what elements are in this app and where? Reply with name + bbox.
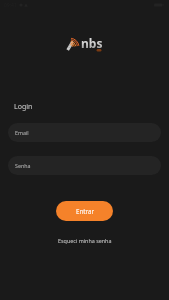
button[interactable]: Email xyxy=(8,123,161,142)
staticText: Senha xyxy=(15,162,31,169)
staticText: nbs xyxy=(81,35,103,51)
staticText: Esqueci minha senha xyxy=(58,237,112,244)
staticText: Email xyxy=(15,129,29,136)
button[interactable]: Senha xyxy=(8,156,161,175)
staticText: Entrar xyxy=(76,207,94,215)
button[interactable]: Esqueci minha senha xyxy=(52,234,118,247)
button[interactable]: Entrar xyxy=(56,201,113,221)
staticText: Login xyxy=(14,102,33,112)
